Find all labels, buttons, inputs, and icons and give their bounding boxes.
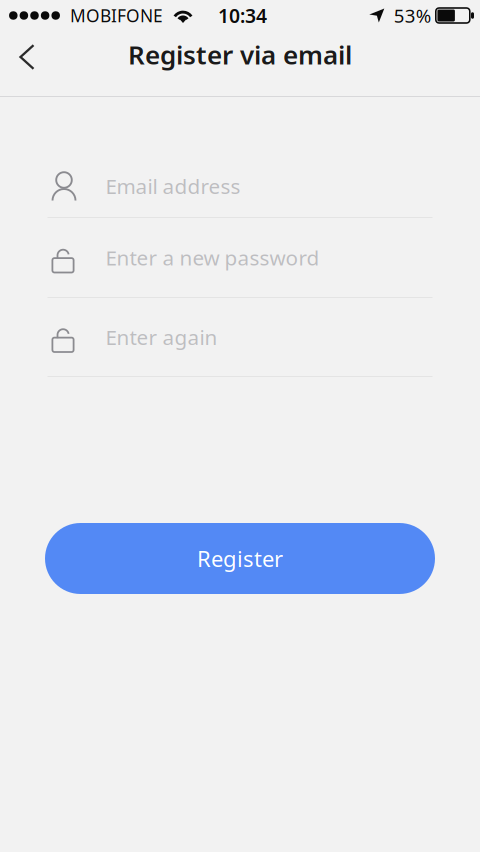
staticText: 53% — [394, 3, 432, 28]
staticText: Register via email — [128, 37, 352, 72]
staticText: Enter a new password — [105, 243, 319, 271]
staticText: Enter again — [105, 323, 217, 351]
staticText: MOBIFONE — [70, 4, 163, 27]
staticText: 10:34 — [218, 2, 267, 29]
button[interactable]: Register — [45, 523, 435, 594]
staticText: Register — [197, 543, 283, 573]
button[interactable]: Back — [0, 35, 52, 91]
staticText: Email address — [105, 172, 240, 200]
